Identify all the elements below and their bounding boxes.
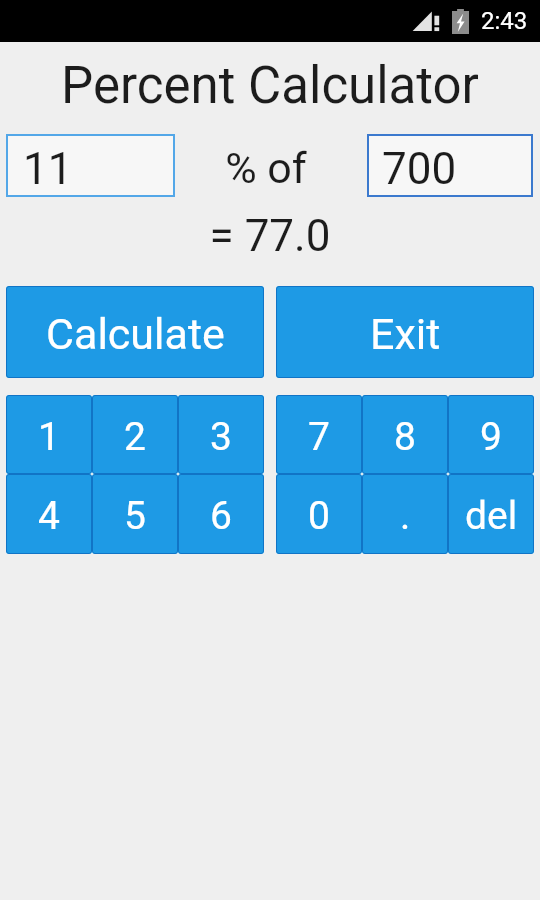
staticText: 0	[308, 493, 330, 539]
staticText: Calculate	[46, 309, 225, 359]
button[interactable]: 1	[6, 395, 92, 474]
button[interactable]: 7	[276, 395, 362, 474]
button[interactable]: 4	[6, 474, 92, 554]
staticText: 2	[124, 414, 146, 460]
button[interactable]: 9	[448, 395, 534, 474]
button[interactable]: Exit	[276, 286, 534, 378]
staticText: 4	[38, 493, 60, 539]
staticText: 3	[210, 414, 232, 460]
button[interactable]: 0	[276, 474, 362, 554]
button[interactable]: 3	[178, 395, 264, 474]
staticText: = 77.0	[0, 210, 540, 262]
staticText: del	[465, 493, 518, 539]
staticText: 11	[23, 143, 73, 195]
staticText: 1	[38, 414, 60, 460]
staticText: % of	[0, 143, 536, 193]
button[interactable]: 2	[92, 395, 178, 474]
staticText: Exit	[370, 309, 441, 359]
staticText: 8	[394, 414, 416, 460]
button[interactable]: 5	[92, 474, 178, 554]
button[interactable]: 700	[367, 134, 533, 197]
staticText: 5	[124, 493, 146, 539]
button[interactable]: Calculate	[6, 286, 264, 378]
button[interactable]: Delete	[448, 474, 534, 554]
staticText: 2:43	[481, 7, 528, 35]
button[interactable]: 8	[362, 395, 448, 474]
button[interactable]: Decimal point	[362, 474, 448, 554]
staticText: 7	[308, 414, 330, 460]
staticText: 9	[480, 414, 502, 460]
staticText: 6	[210, 493, 232, 539]
staticText: 700	[382, 143, 457, 195]
staticText: .	[400, 493, 411, 539]
staticText: Percent Calculator	[0, 56, 540, 116]
button[interactable]: 11	[6, 134, 175, 197]
button[interactable]: 6	[178, 474, 264, 554]
